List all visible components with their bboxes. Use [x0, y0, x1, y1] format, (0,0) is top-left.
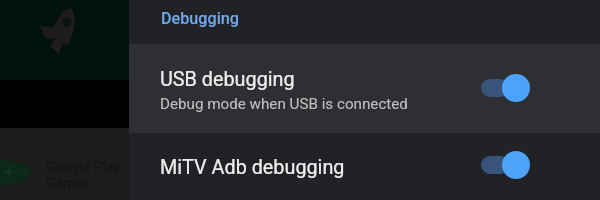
button[interactable]: USB debugging [129, 44, 600, 133]
button[interactable]: MiTV Adb debugging [129, 136, 600, 193]
staticText: USB debugging [160, 68, 295, 91]
staticText: Debug mode when USB is connected [160, 95, 408, 113]
staticText: Google Play [46, 159, 121, 175]
staticText: Debugging [161, 9, 240, 28]
staticText: MiTV Adb debugging [160, 156, 345, 179]
staticText: Games [46, 175, 91, 191]
button[interactable]: Toggle MiTV Adb debugging [481, 150, 530, 180]
button[interactable]: Toggle USB debugging [481, 73, 530, 103]
